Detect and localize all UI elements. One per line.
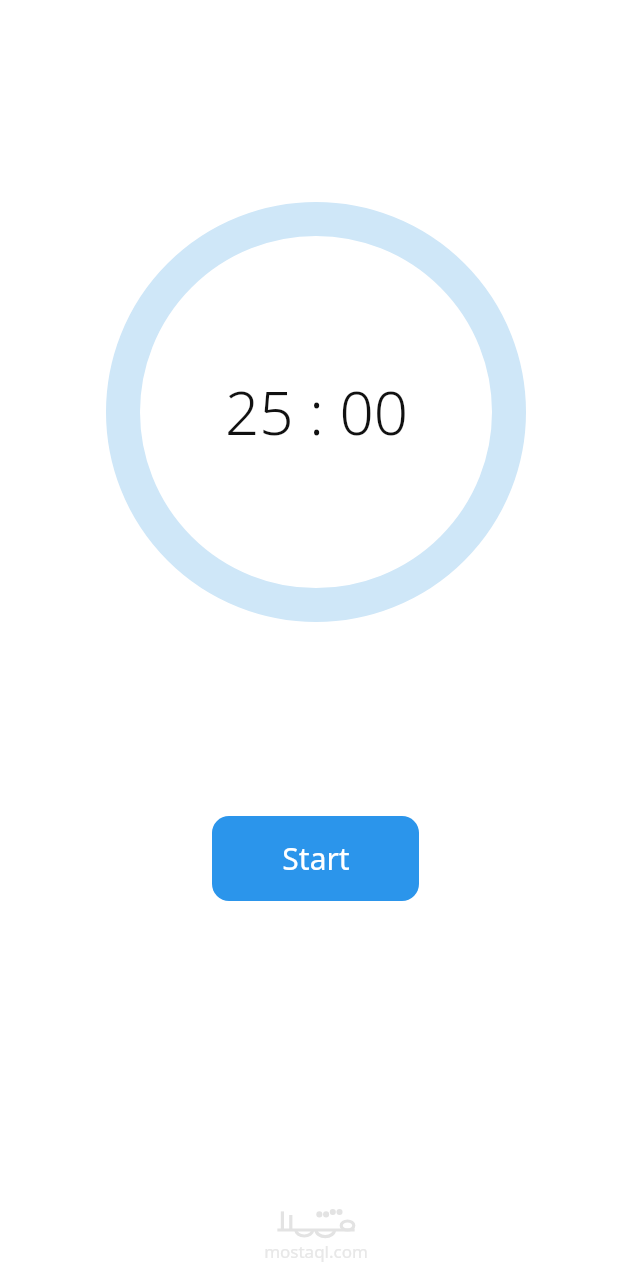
staticText: mostaql.com [264,1240,368,1263]
staticText: Start [282,838,350,879]
other: mostaql logo [274,1206,358,1236]
staticText: 25 : 00 [225,371,408,453]
button[interactable]: Start [212,816,419,901]
